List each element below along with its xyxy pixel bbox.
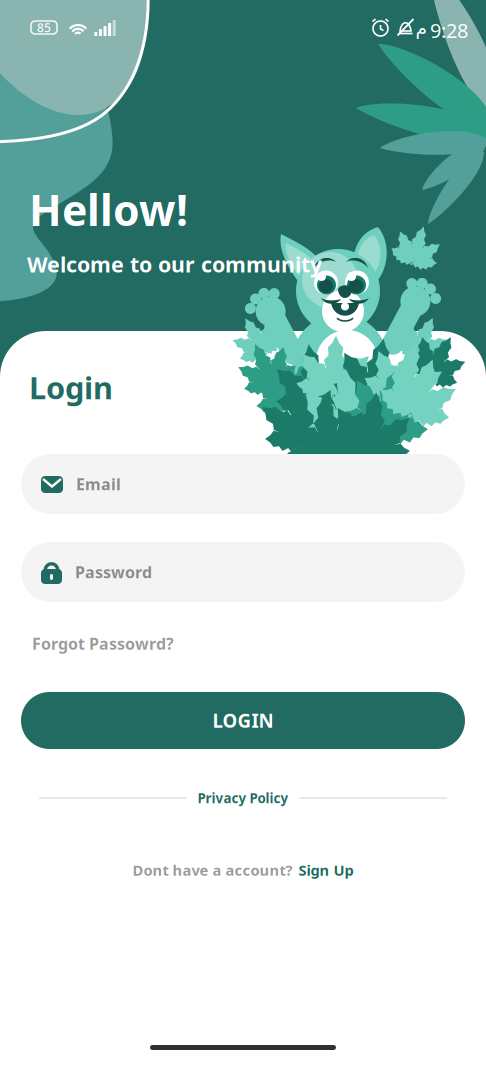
- staticText: 9:28: [430, 17, 468, 44]
- staticText: Dont have a account?: [132, 860, 292, 880]
- staticText: Password: [75, 561, 152, 583]
- staticText: Welcome to our community: [27, 250, 322, 278]
- staticText: Privacy Policy: [197, 789, 288, 807]
- staticText: Hellow!: [29, 181, 188, 238]
- staticText: Forgot Passowrd?: [32, 633, 174, 654]
- button[interactable]: Privacy Policy: [197, 789, 288, 807]
- staticText: Email: [76, 473, 121, 495]
- staticText: م: [415, 18, 427, 39]
- staticText: 85: [37, 19, 51, 35]
- button[interactable]: Sign Up: [298, 860, 353, 880]
- staticText: Sign Up: [298, 860, 353, 880]
- button[interactable]: LOGIN: [21, 692, 465, 749]
- staticText: Login: [29, 367, 113, 408]
- staticText: LOGIN: [212, 708, 273, 733]
- button[interactable]: Forgot Passowrd?: [32, 633, 174, 654]
